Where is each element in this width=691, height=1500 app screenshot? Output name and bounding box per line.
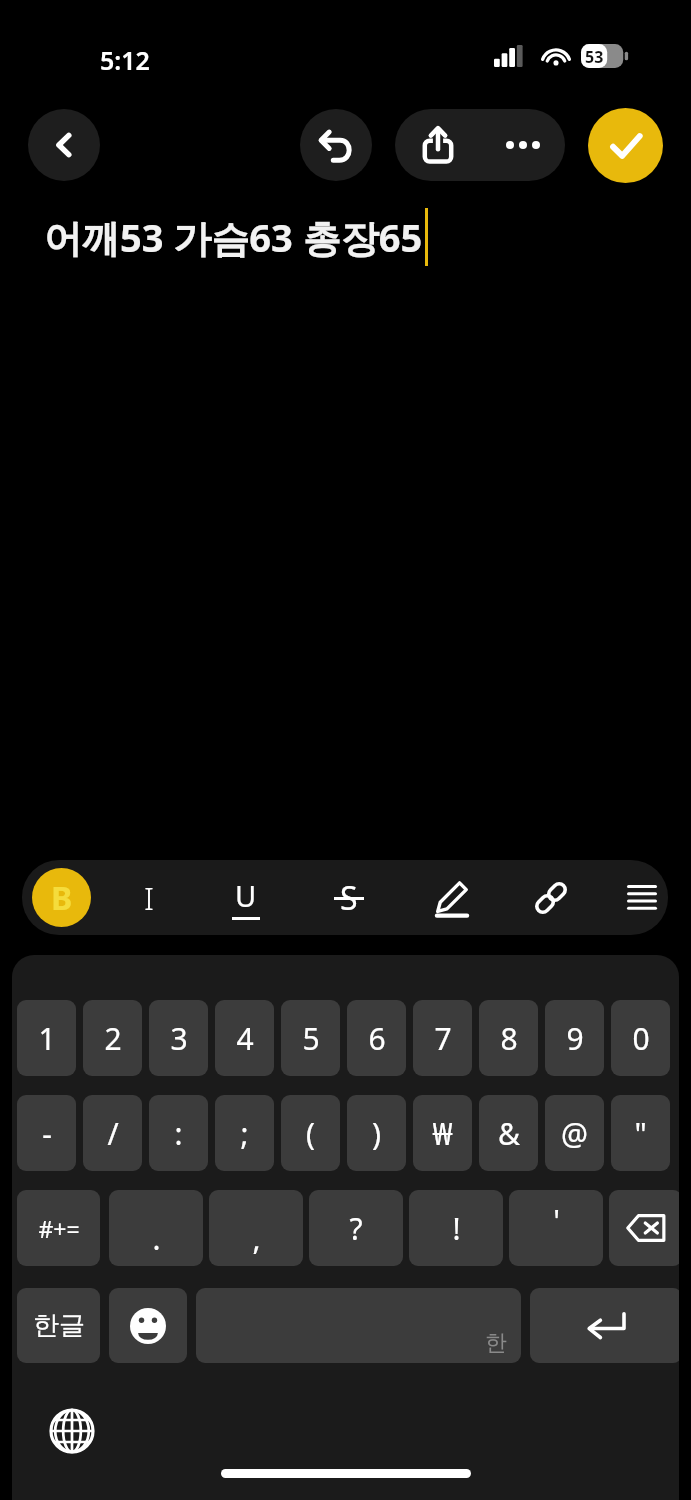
button[interactable]: 3 [149, 1000, 208, 1076]
staticText: 한 [485, 1329, 507, 1357]
staticText: 어깨53 가슴63 총장65 [44, 211, 423, 263]
staticText: . [152, 1218, 161, 1259]
button[interactable]: More options [480, 109, 565, 181]
button[interactable]: Done [588, 108, 663, 183]
button[interactable]: @ [545, 1095, 604, 1171]
button[interactable]: 2 [83, 1000, 142, 1076]
staticText: ! [452, 1208, 461, 1249]
button[interactable]: Insert link [519, 865, 583, 930]
staticText: U [235, 876, 257, 915]
staticText: 9 [566, 1018, 584, 1059]
button[interactable]: ( [281, 1095, 340, 1171]
staticText: 53 [585, 46, 604, 68]
button[interactable]: 6 [347, 1000, 406, 1076]
staticText: I [144, 876, 154, 920]
button[interactable]: Undo [300, 109, 372, 181]
button[interactable]: 한글 [17, 1288, 100, 1363]
staticText: 8 [500, 1018, 518, 1059]
button[interactable]: Alignment [610, 865, 668, 930]
button[interactable]: Underline [214, 865, 278, 930]
button[interactable]: 1 [17, 1000, 76, 1076]
staticText: 7 [434, 1018, 452, 1059]
staticText: 4 [236, 1018, 254, 1059]
staticText: 0 [632, 1018, 650, 1059]
button[interactable]: Return [530, 1288, 679, 1363]
button[interactable]: 5 [281, 1000, 340, 1076]
staticText: ) [372, 1113, 381, 1154]
staticText: 2 [104, 1018, 122, 1059]
staticText: 6 [368, 1018, 386, 1059]
button[interactable]: ' [509, 1190, 603, 1266]
button[interactable]: , [209, 1190, 303, 1266]
button[interactable]: Italic [117, 865, 181, 930]
button[interactable]: Share [395, 109, 480, 181]
button[interactable]: " [611, 1095, 670, 1171]
button[interactable]: Change keyboard language [44, 1403, 100, 1459]
button[interactable]: Emoji [109, 1288, 187, 1363]
staticText: 3 [170, 1018, 188, 1059]
button[interactable]: ₩ [413, 1095, 472, 1171]
button[interactable]: 9 [545, 1000, 604, 1076]
staticText: 5 [302, 1018, 320, 1059]
button[interactable]: ! [409, 1190, 503, 1266]
staticText: ? [349, 1208, 363, 1249]
button[interactable]: Space [196, 1288, 521, 1363]
staticText: ' [553, 1200, 560, 1241]
staticText: , [252, 1218, 261, 1259]
staticText: #+= [38, 1213, 80, 1244]
staticText: 한글 [33, 1309, 85, 1342]
button[interactable]: 7 [413, 1000, 472, 1076]
button[interactable]: Strikethrough [317, 865, 381, 930]
button[interactable]: ) [347, 1095, 406, 1171]
button[interactable]: - [17, 1095, 76, 1171]
staticText: ₩ [432, 1113, 453, 1154]
staticText: @ [561, 1113, 588, 1154]
button[interactable]: #+= [17, 1190, 100, 1266]
staticText: : [174, 1113, 183, 1154]
staticText: & [498, 1113, 520, 1154]
button[interactable]: 4 [215, 1000, 274, 1076]
button[interactable]: Backspace [609, 1190, 679, 1266]
staticText: " [634, 1113, 647, 1154]
button[interactable]: Highlight [420, 865, 484, 930]
staticText: 5:12 [100, 43, 150, 77]
button[interactable]: ; [215, 1095, 274, 1171]
button[interactable]: / [83, 1095, 142, 1171]
button[interactable]: Bold [32, 868, 91, 927]
staticText: ; [240, 1113, 249, 1154]
staticText: - [42, 1113, 52, 1154]
button[interactable]: 0 [611, 1000, 670, 1076]
button[interactable]: : [149, 1095, 208, 1171]
button[interactable]: . [109, 1190, 203, 1266]
staticText: / [107, 1113, 119, 1154]
button[interactable]: 8 [479, 1000, 538, 1076]
button[interactable]: & [479, 1095, 538, 1171]
button[interactable]: ? [309, 1190, 403, 1266]
button[interactable]: Back [28, 109, 100, 181]
staticText: S [340, 876, 358, 920]
staticText: 1 [38, 1018, 56, 1059]
staticText: ( [306, 1113, 315, 1154]
staticText: B [51, 876, 73, 920]
